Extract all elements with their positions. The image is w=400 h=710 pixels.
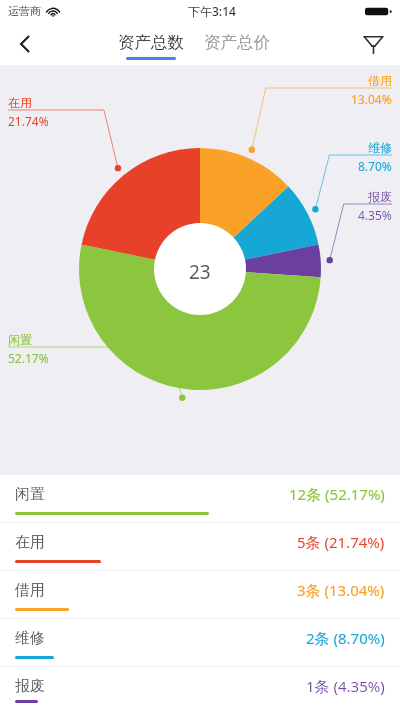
staticText: 闲置 [8, 332, 32, 347]
staticText: 12条 (52.17%) [289, 484, 385, 504]
staticText: 报废 [368, 189, 392, 204]
staticText: 4.35% [358, 207, 392, 223]
staticText: 在用 [15, 533, 45, 552]
staticText: 报废 [15, 677, 45, 696]
button[interactable]: Filter [352, 23, 394, 65]
staticText: 运营商 [8, 4, 41, 18]
staticText: 在用 [8, 95, 32, 110]
staticText: 2条 (8.70%) [306, 628, 385, 648]
staticText: 23 [189, 259, 211, 285]
staticText: 借用 [15, 581, 45, 600]
button[interactable]: 报废 [0, 667, 400, 710]
staticText: 8.70% [358, 158, 392, 174]
staticText: 21.74% [8, 113, 49, 129]
staticText: 资产总数 [118, 32, 184, 53]
staticText: 维修 [368, 140, 392, 155]
button[interactable]: 维修 [0, 619, 400, 666]
staticText: 52.17% [8, 350, 49, 366]
staticText: 闲置 [15, 485, 45, 504]
staticText: 维修 [15, 629, 45, 648]
staticText: 下午3:14 [188, 3, 236, 19]
button[interactable]: 借用 [0, 571, 400, 618]
button[interactable]: 资产总价 [201, 32, 273, 53]
button[interactable]: 资产总数 [115, 32, 187, 60]
staticText: 5条 (21.74%) [297, 532, 385, 552]
button[interactable]: 闲置 [0, 475, 400, 522]
button[interactable]: Back [4, 23, 46, 65]
staticText: 13.04% [351, 91, 392, 107]
staticText: 3条 (13.04%) [297, 580, 385, 600]
button[interactable]: 在用 [0, 523, 400, 570]
staticText: 1条 (4.35%) [306, 676, 385, 696]
staticText: 资产总价 [204, 32, 270, 53]
staticText: 借用 [368, 73, 392, 88]
